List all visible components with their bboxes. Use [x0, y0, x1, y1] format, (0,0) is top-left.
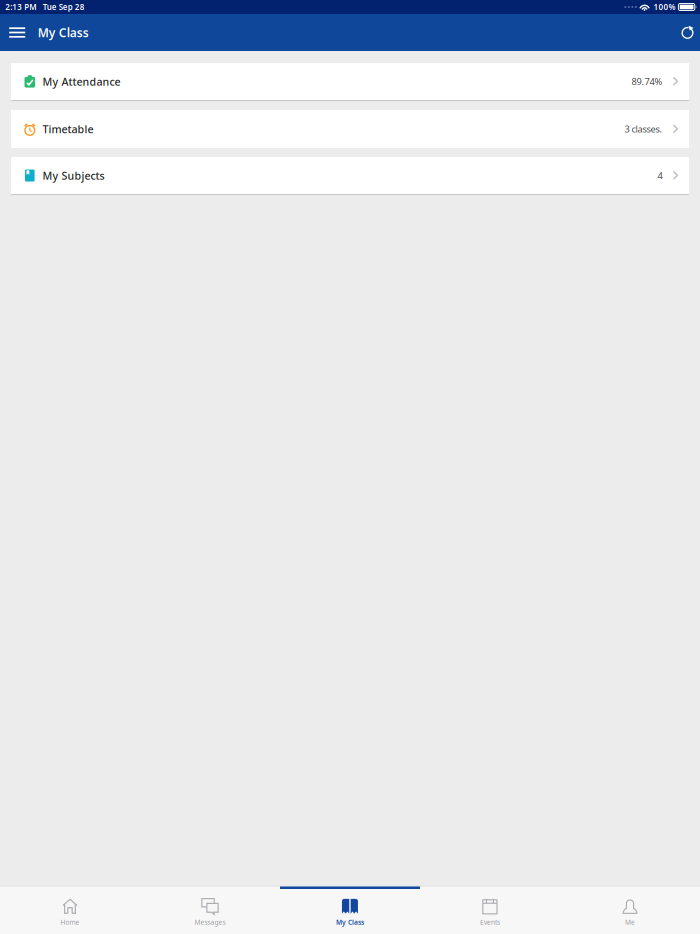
staticText: 2:13 PM — [5, 2, 36, 12]
button[interactable]: My Attendance — [11, 63, 689, 101]
staticText: My Subjects — [43, 168, 105, 183]
button[interactable]: Me — [560, 886, 700, 934]
staticText: Messages — [194, 918, 225, 927]
button[interactable]: My Class — [280, 886, 420, 934]
staticText: 100% — [653, 2, 675, 12]
staticText: Home — [60, 918, 79, 927]
staticText: 3 classes. — [624, 123, 662, 135]
button[interactable]: Home — [0, 886, 140, 934]
button[interactable]: My Subjects — [11, 157, 689, 195]
staticText: Events — [480, 918, 500, 927]
button[interactable]: Messages — [140, 886, 280, 934]
button[interactable]: Menu — [0, 14, 25, 51]
button[interactable]: Events — [420, 886, 560, 934]
staticText: My Class — [38, 24, 89, 40]
button[interactable]: Refresh — [681, 14, 700, 51]
staticText: 89.74% — [631, 75, 662, 88]
staticText: My Attendance — [43, 74, 121, 89]
staticText: 4 — [657, 169, 662, 182]
staticText: Tue Sep 28 — [43, 2, 85, 12]
staticText: Me — [625, 918, 635, 927]
staticText: My Class — [336, 918, 364, 927]
staticText: Timetable — [43, 122, 94, 136]
button[interactable]: Timetable — [11, 110, 689, 148]
